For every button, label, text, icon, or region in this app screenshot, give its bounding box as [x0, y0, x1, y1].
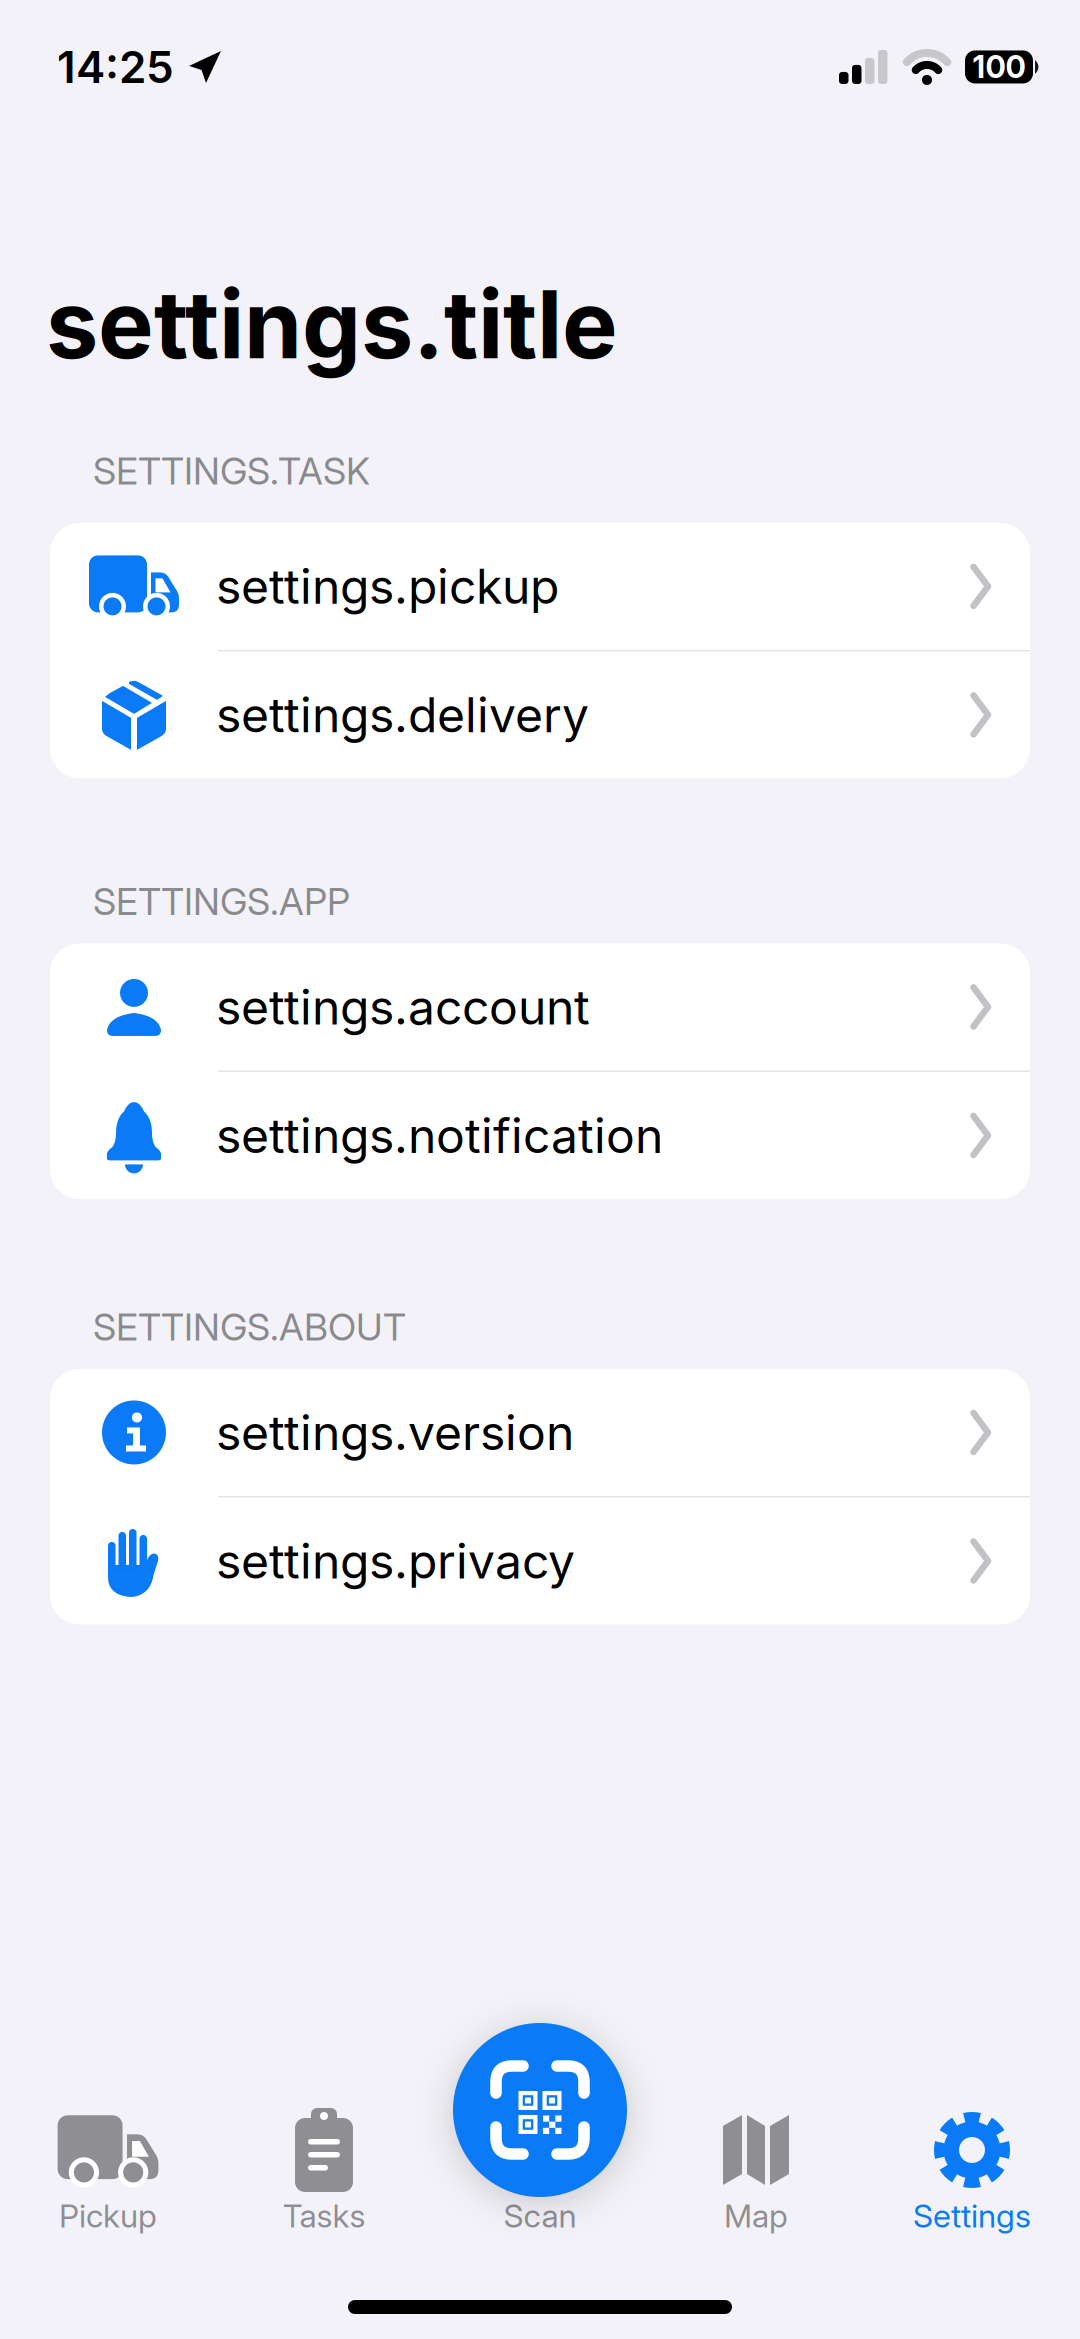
staticText: settings.version [216, 1404, 574, 1461]
staticText: settings.title [46, 268, 618, 381]
button[interactable]: settings.version [50, 1369, 1030, 1496]
staticText: settings.notification [216, 1107, 663, 1164]
button[interactable]: settings.delivery [50, 651, 1030, 778]
staticText: Tasks [282, 2197, 365, 2235]
staticText: Map [724, 2197, 788, 2235]
button[interactable]: Tasks [216, 2108, 432, 2235]
button[interactable]: settings.account [50, 943, 1030, 1070]
staticText: settings.pickup [216, 558, 559, 615]
staticText: settings.privacy [216, 1533, 575, 1589]
button[interactable]: settings.pickup [50, 523, 1030, 650]
button[interactable]: settings.privacy [50, 1497, 1030, 1624]
staticText: 14:25 [57, 41, 174, 93]
button[interactable]: Pickup [0, 2108, 216, 2235]
staticText: SETTINGS.APP [93, 879, 350, 923]
staticText: 100 [972, 49, 1025, 85]
button[interactable]: Map [648, 2108, 864, 2235]
staticText: settings.account [216, 979, 590, 1035]
button[interactable]: Settings [864, 2108, 1080, 2235]
button[interactable]: Scan [432, 2108, 648, 2235]
staticText: settings.delivery [216, 687, 589, 743]
staticText: SETTINGS.TASK [93, 449, 370, 493]
staticText: Scan [503, 2197, 576, 2235]
staticText: Pickup [59, 2197, 157, 2235]
staticText: Settings [913, 2197, 1031, 2235]
staticText: SETTINGS.ABOUT [93, 1305, 406, 1349]
button[interactable]: settings.notification [50, 1072, 1030, 1199]
button[interactable]: Scan [453, 2023, 627, 2197]
